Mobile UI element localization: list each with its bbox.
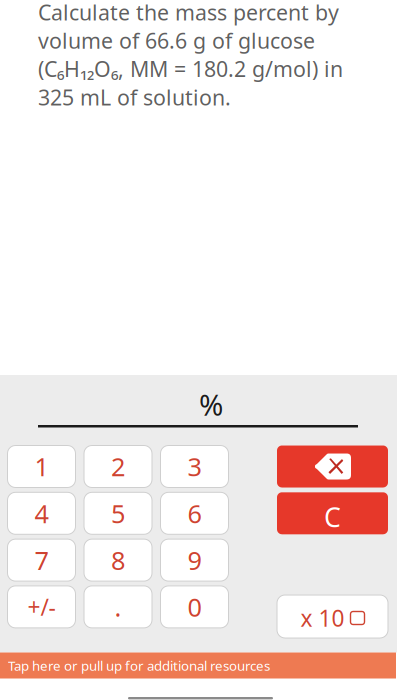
- button[interactable]: 6: [160, 492, 228, 534]
- button[interactable]: 9: [160, 539, 228, 581]
- button[interactable]: Tap here or pull up for additional resou…: [0, 652, 396, 678]
- button[interactable]: .: [84, 586, 152, 628]
- button[interactable]: Delete: [277, 445, 388, 487]
- staticText: C: [324, 499, 341, 534]
- staticText: .: [114, 590, 121, 624]
- button[interactable]: 0: [160, 586, 228, 628]
- staticText: 4: [34, 496, 48, 530]
- button[interactable]: C: [277, 492, 388, 534]
- staticText: 0: [187, 590, 201, 624]
- staticText: 325 mL of solution.: [38, 83, 231, 111]
- staticText: +/-: [27, 592, 55, 622]
- staticText: (C₆H₁₂O₆, MM = 180.2 g/mol) in: [38, 55, 343, 83]
- button[interactable]: 2: [84, 445, 152, 487]
- staticText: 5: [111, 496, 125, 530]
- button[interactable]: 7: [7, 539, 75, 581]
- staticText: Tap here or pull up for additional resou…: [8, 657, 270, 674]
- button[interactable]: 1: [7, 445, 75, 487]
- staticText: 2: [111, 450, 125, 483]
- staticText: 3: [187, 450, 201, 483]
- button[interactable]: 3: [160, 445, 228, 487]
- button[interactable]: 4: [7, 492, 75, 534]
- button[interactable]: 5: [84, 492, 152, 534]
- staticText: 7: [34, 543, 48, 577]
- button[interactable]: x 10: [277, 595, 388, 638]
- button[interactable]: +/-: [7, 586, 75, 628]
- staticText: 6: [187, 496, 201, 530]
- staticText: x 10: [300, 603, 344, 633]
- button[interactable]: 8: [84, 539, 152, 581]
- staticText: 8: [111, 543, 125, 577]
- staticText: volume of 66.6 g of glucose: [38, 26, 315, 55]
- staticText: 1: [34, 450, 48, 483]
- staticText: %: [199, 385, 223, 424]
- staticText: Calculate the mass percent by: [38, 0, 339, 26]
- staticText: 9: [187, 543, 201, 577]
